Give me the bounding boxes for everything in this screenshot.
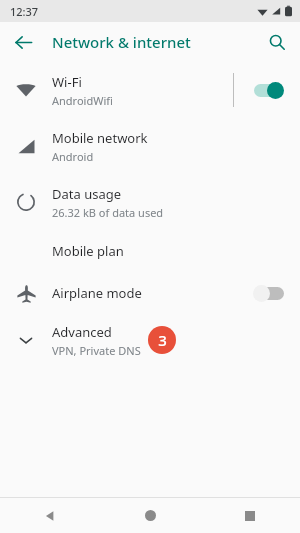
button[interactable]: Recent apps [200,498,300,533]
button[interactable]: Back [8,27,38,57]
staticText: Advanced [52,323,112,341]
staticText: 12:37 [10,4,39,19]
button[interactable]: Home [100,498,200,533]
staticText: Mobile plan [52,242,124,260]
button[interactable]: Mobile plan [0,230,300,272]
button[interactable]: Mobile network [0,118,300,174]
button[interactable]: Airplane mode toggle [252,283,286,303]
button[interactable]: Wi-Fi toggle [252,80,286,100]
staticText: Mobile network [52,129,148,147]
staticText: Android [52,149,94,164]
button[interactable]: Wi-Fi [0,62,300,118]
button[interactable]: Advanced [0,314,300,366]
staticText: AndroidWifi [52,93,113,108]
button[interactable]: Data usage [0,174,300,230]
staticText: Wi-Fi [52,73,82,91]
button[interactable]: Search [262,27,292,57]
staticText: Network & internet [52,32,191,52]
staticText: Data usage [52,185,122,203]
staticText: Airplane mode [52,284,142,302]
staticText: 26.32 kB of data used [52,205,164,220]
button[interactable]: Airplane mode [0,272,300,314]
staticText: 3 [158,330,167,350]
button[interactable]: Back [0,498,100,533]
staticText: VPN, Private DNS [52,343,141,358]
